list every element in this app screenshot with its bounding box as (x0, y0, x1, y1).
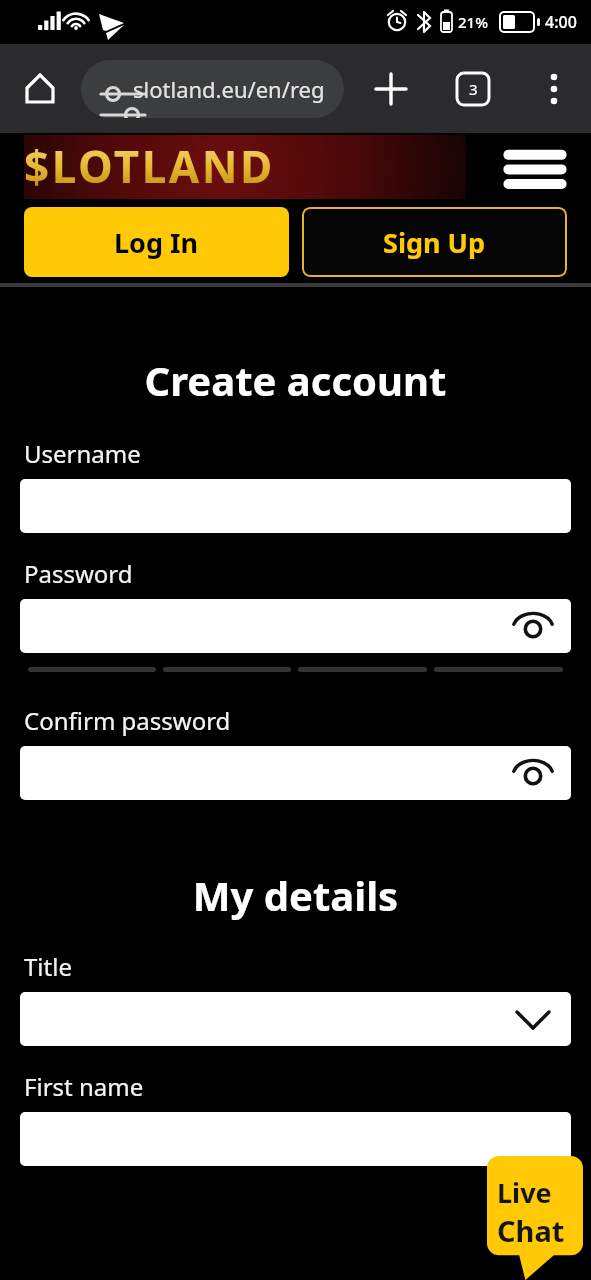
staticText: Log In (114, 224, 199, 261)
staticText: My details (0, 868, 591, 922)
button[interactable]: Live Chat (487, 1156, 583, 1280)
button[interactable]: Home (14, 63, 66, 115)
button[interactable] (20, 479, 571, 533)
button[interactable] (20, 1112, 571, 1166)
button[interactable]: Open dropdown (20, 992, 571, 1046)
button[interactable]: Open dropdown (511, 997, 555, 1041)
staticText: Confirm password (24, 704, 231, 737)
staticText: Live (497, 1174, 552, 1211)
staticText: First name (24, 1070, 144, 1103)
button[interactable]: Show password (511, 604, 555, 648)
button[interactable]: Sign Up (302, 207, 567, 277)
staticText: Chat (497, 1211, 565, 1250)
staticText: Username (24, 437, 141, 470)
button[interactable]: Log In (24, 207, 289, 277)
button[interactable]: Show password (511, 751, 555, 795)
button[interactable]: Show password (20, 599, 571, 653)
staticText: Password (24, 557, 133, 590)
button[interactable]: Tabs (448, 64, 498, 114)
staticText: 21% (458, 12, 488, 32)
button[interactable]: Show password (20, 746, 571, 800)
button[interactable]: New tab (366, 64, 416, 114)
staticText: Sign Up (383, 224, 486, 261)
button[interactable]: slotland.eu/en/reg (81, 60, 344, 118)
staticText: Create account (0, 353, 591, 407)
staticText: slotland.eu/en/reg (133, 74, 325, 104)
button[interactable]: Menu (501, 141, 569, 193)
staticText: 3 (469, 79, 478, 99)
staticText: 4:00 (545, 11, 577, 33)
button[interactable]: $LOTLAND (24, 136, 275, 196)
button[interactable]: More options (531, 66, 577, 112)
staticText: Title (24, 950, 72, 983)
